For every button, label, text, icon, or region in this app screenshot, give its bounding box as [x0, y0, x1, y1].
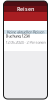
button[interactable]: Woche	[25, 21, 51, 26]
staticText: Buchung 1234	[5, 33, 29, 38]
staticText: Keine aktuellen Reisen	[7, 29, 44, 35]
staticText: Reisen	[17, 5, 34, 13]
button[interactable]: Heute	[0, 21, 25, 26]
staticText: 12.05.2024 · 2 Personen	[5, 39, 45, 45]
